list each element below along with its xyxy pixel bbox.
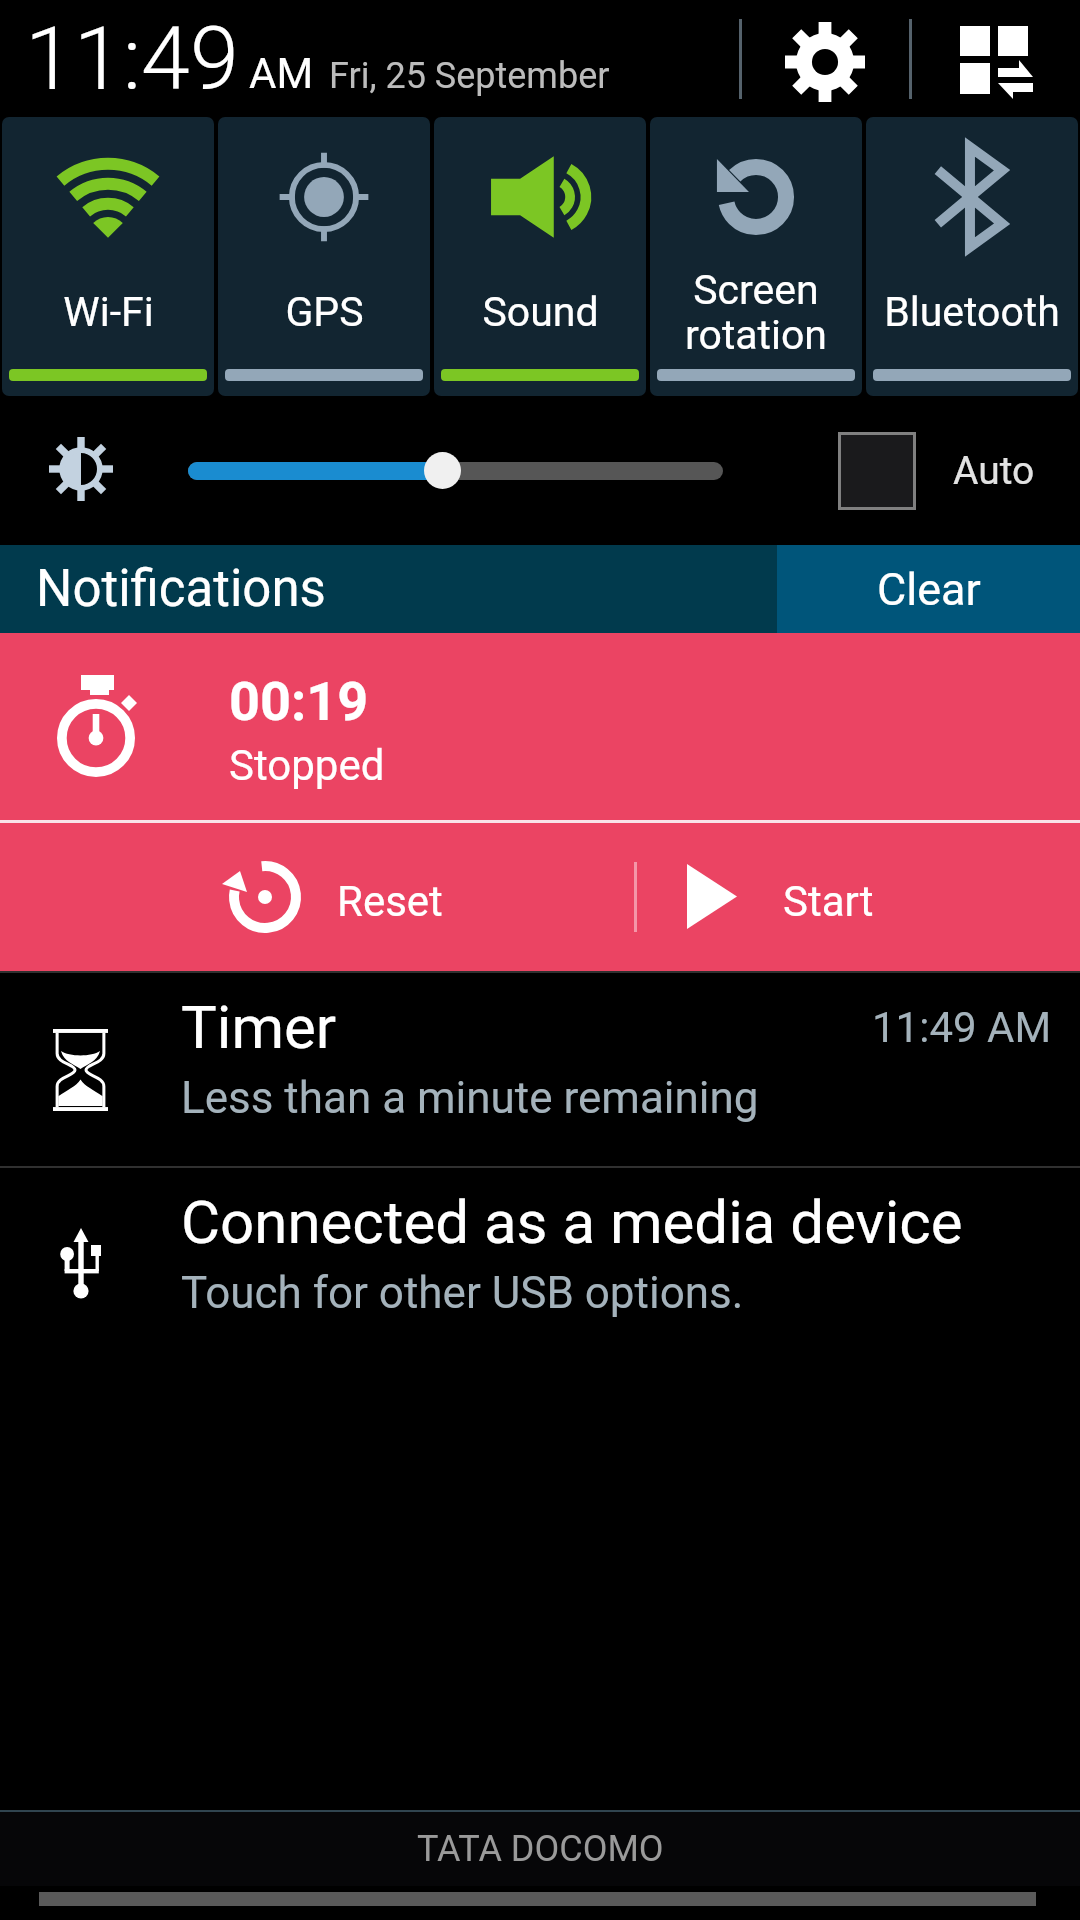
staticText: AM: [249, 49, 314, 98]
staticText: Less than a minute remaining: [181, 1072, 759, 1124]
staticText: TATA DOCOMO: [417, 1828, 664, 1870]
staticText: 00:19: [229, 670, 369, 733]
button[interactable]: Settings: [741, 0, 909, 117]
button[interactable]: Bluetooth: [866, 117, 1078, 396]
staticText: Sound: [482, 288, 599, 336]
staticText: GPS: [285, 288, 364, 336]
staticText: 11:49 AM: [872, 1003, 1052, 1052]
button[interactable]: [188, 462, 723, 480]
button[interactable]: Wi-Fi: [2, 117, 214, 396]
staticText: Fri, 25 September: [329, 55, 610, 97]
staticText: Auto: [953, 448, 1035, 494]
staticText: 11:49: [25, 7, 239, 110]
staticText: Screen rotation: [685, 266, 827, 359]
button[interactable]: Start: [638, 823, 1080, 971]
button[interactable]: GPS: [218, 117, 430, 396]
button[interactable]: Reset: [0, 823, 635, 971]
button[interactable]: 00:19: [0, 633, 1080, 820]
staticText: Notifications: [36, 559, 326, 619]
button[interactable]: Sound: [434, 117, 646, 396]
staticText: Touch for other USB options.: [181, 1267, 744, 1319]
button[interactable]: Quick settings: [912, 0, 1080, 117]
staticText: Clear: [877, 563, 981, 616]
staticText: Bluetooth: [884, 288, 1060, 336]
button[interactable]: Timer: [0, 971, 1080, 1166]
staticText: Start: [783, 877, 874, 926]
button[interactable]: Connected as a media device: [0, 1166, 1080, 1362]
button[interactable]: Clear: [777, 545, 1080, 633]
staticText: Timer: [181, 992, 337, 1062]
staticText: Connected as a media device: [181, 1187, 963, 1257]
staticText: Wi-Fi: [63, 288, 154, 336]
staticText: Stopped: [229, 741, 385, 790]
staticText: Reset: [337, 877, 443, 926]
button[interactable]: Screen rotation: [650, 117, 862, 396]
button[interactable]: Auto: [838, 432, 1035, 510]
